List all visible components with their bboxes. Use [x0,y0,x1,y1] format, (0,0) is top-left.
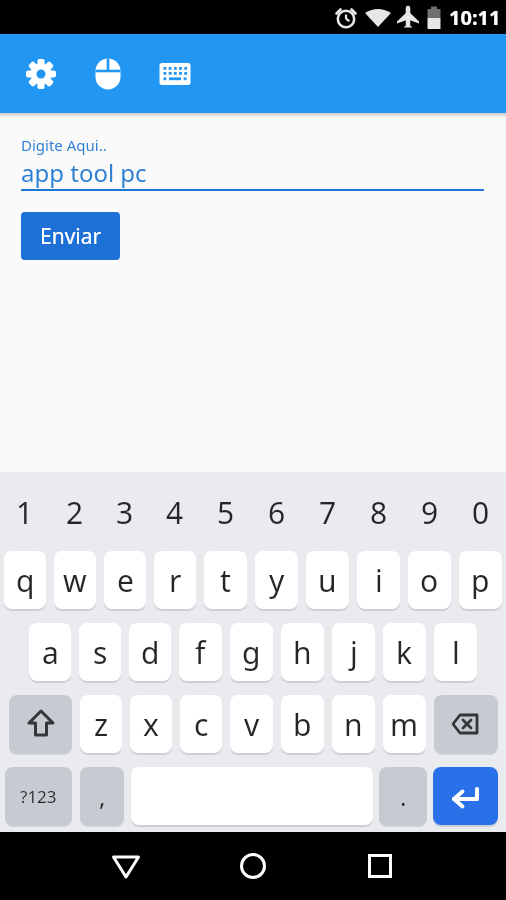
staticText: 8 [370,492,388,533]
staticText: m [390,704,419,745]
button[interactable]: v [230,695,273,753]
staticText: 10:11 [449,4,501,31]
staticText: q [16,560,35,601]
button[interactable]: s [79,623,121,681]
staticText: . [400,780,407,813]
staticText: l [452,632,460,673]
button[interactable]: x [130,695,172,753]
button[interactable] [340,836,420,896]
button[interactable]: c [180,695,222,753]
button[interactable]: 7 [302,480,353,544]
button[interactable] [434,695,498,753]
button[interactable]: 2 [50,480,100,544]
staticText: , [99,780,106,813]
button[interactable]: 3 [100,480,150,544]
staticText: v [244,704,260,745]
staticText: Enviar [40,222,102,251]
button[interactable] [74,34,141,113]
staticText: y [269,560,285,601]
button[interactable]: f [179,623,222,681]
button[interactable]: a [29,623,71,681]
button[interactable]: 9 [404,480,455,544]
staticText: i [375,560,383,601]
button[interactable] [86,836,166,896]
button[interactable]: t [204,551,247,609]
staticText: 2 [66,492,84,533]
button[interactable]: 6 [251,480,302,544]
button[interactable]: 5 [200,480,251,544]
button[interactable] [141,34,208,113]
button[interactable]: y [255,551,298,609]
button[interactable]: , [80,767,124,825]
button[interactable]: e [104,551,146,609]
button[interactable]: b [281,695,324,753]
button[interactable]: . [379,767,427,825]
button[interactable] [433,767,498,825]
button[interactable]: Enviar [21,212,120,260]
button[interactable]: m [383,695,426,753]
staticText: 5 [217,492,235,533]
staticText: 1 [16,492,34,533]
staticText: z [94,704,109,745]
staticText: app tool pc [21,156,147,189]
staticText: g [242,632,261,673]
staticText: x [143,704,159,745]
button[interactable] [213,836,293,896]
staticText: u [318,560,337,601]
button[interactable]: q [4,551,46,609]
staticText: a [42,632,59,673]
button[interactable]: d [129,623,171,681]
staticText: ?123 [20,785,57,808]
button[interactable]: l [434,623,477,681]
button[interactable]: ?123 [5,767,72,825]
button[interactable]: o [408,551,451,609]
staticText: 3 [116,492,134,533]
staticText: d [141,632,160,673]
staticText: f [195,632,206,673]
staticText: s [93,632,108,673]
staticText: 0 [472,492,490,533]
staticText: c [194,704,209,745]
staticText: o [420,560,439,601]
staticText: e [117,560,134,601]
staticText: w [63,560,87,601]
button[interactable]: g [230,623,273,681]
button[interactable]: 1 [0,480,50,544]
staticText: 4 [166,492,184,533]
button[interactable]: j [332,623,375,681]
staticText: h [293,632,312,673]
button[interactable]: h [281,623,324,681]
button[interactable]: k [383,623,426,681]
button[interactable]: w [54,551,96,609]
staticText: 7 [319,492,337,533]
staticText: p [471,560,490,601]
button[interactable]: u [306,551,349,609]
staticText: r [169,560,182,601]
staticText: n [344,704,363,745]
button[interactable]: 8 [353,480,404,544]
button[interactable]: 4 [150,480,200,544]
staticText: t [220,560,231,601]
staticText: Digite Aqui.. [21,135,107,155]
staticText: j [350,632,358,673]
staticText: 9 [421,492,439,533]
button[interactable]: i [357,551,400,609]
button[interactable]: z [80,695,122,753]
staticText: k [396,632,413,673]
button[interactable]: r [154,551,196,609]
staticText: 6 [268,492,286,533]
staticText: b [293,704,312,745]
button[interactable] [9,695,72,753]
button[interactable]: p [459,551,502,609]
button[interactable] [7,34,74,113]
button[interactable]: 0 [455,480,506,544]
button[interactable]: n [332,695,375,753]
